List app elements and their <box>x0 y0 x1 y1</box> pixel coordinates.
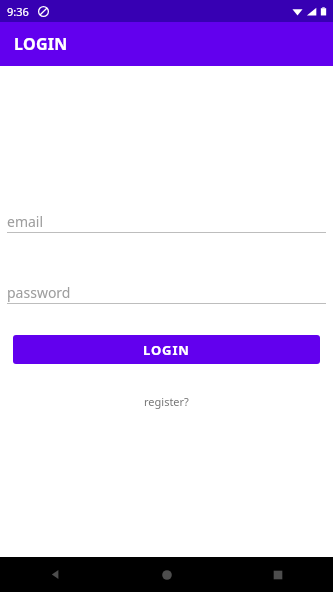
staticText: email <box>7 212 44 231</box>
staticText: LOGIN <box>143 341 190 359</box>
button[interactable]: register? <box>136 391 197 412</box>
staticText: LOGIN <box>14 33 68 55</box>
staticText: 9:36 <box>7 4 29 19</box>
button[interactable]: Back <box>0 557 111 592</box>
button[interactable]: Home <box>111 557 222 592</box>
button[interactable]: Recent apps <box>222 557 333 592</box>
button[interactable]: LOGIN <box>13 335 320 364</box>
staticText: password <box>7 283 71 302</box>
staticText: register? <box>144 394 189 409</box>
